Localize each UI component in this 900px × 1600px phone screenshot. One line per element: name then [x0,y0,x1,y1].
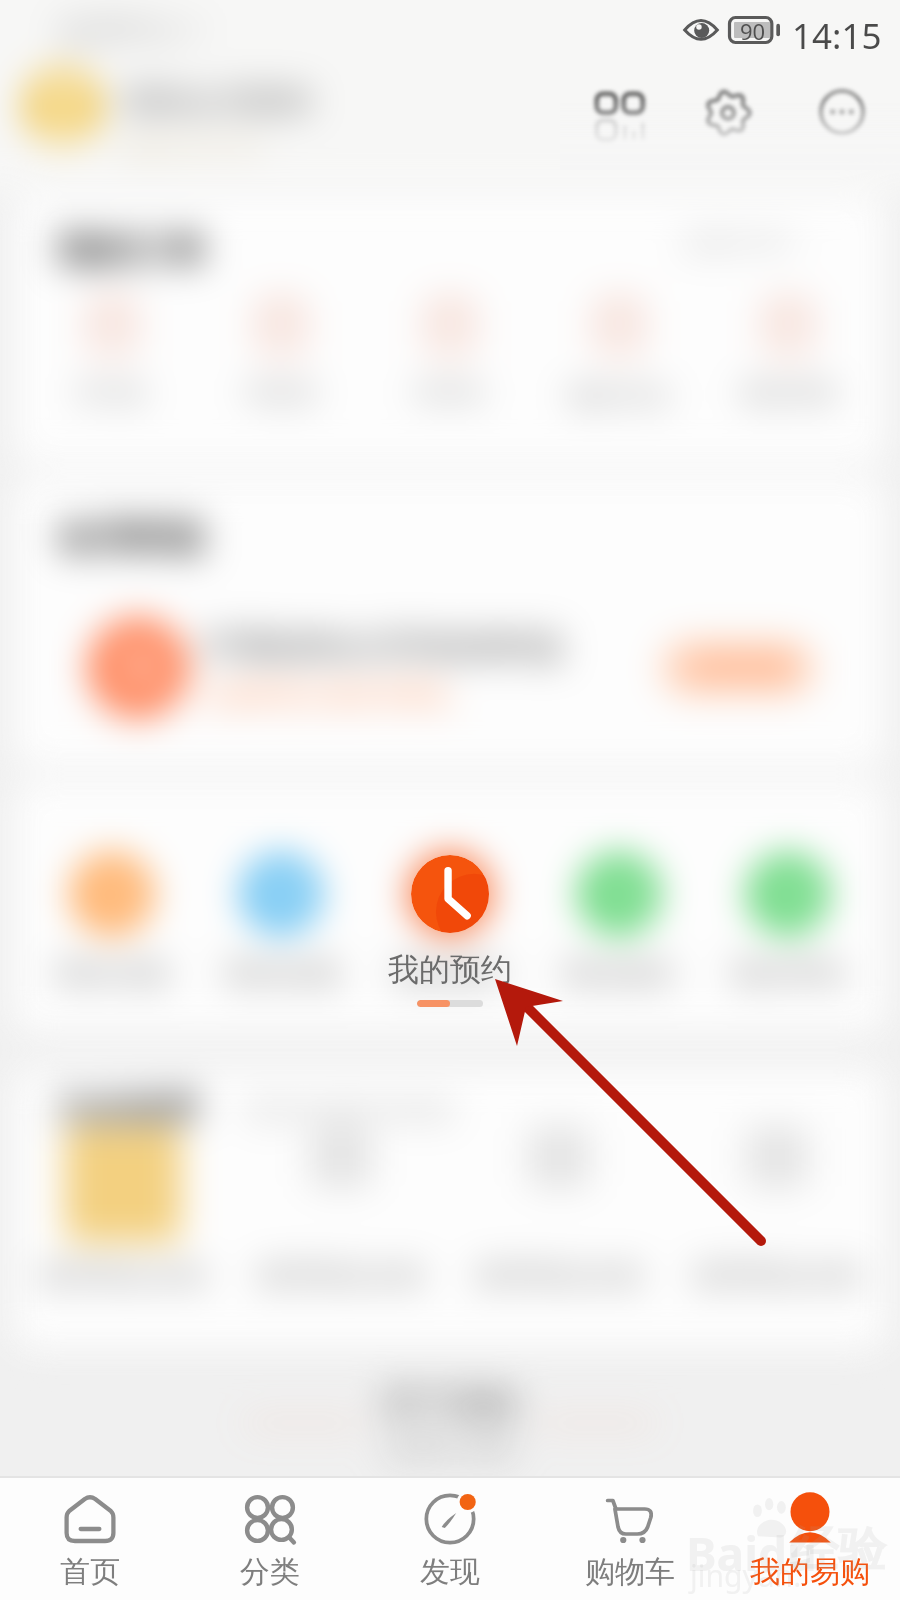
staticText: 我的优惠 [54,955,170,992]
button[interactable]: More options [807,77,877,147]
button[interactable]: Settings [693,78,763,148]
staticText: 首页 [60,1553,120,1591]
staticText: 我的服务 [561,955,677,992]
staticText: 会员中心 > [58,8,203,49]
staticText: 立即开通 [690,653,786,683]
staticText: 为你推荐 [55,1086,199,1131]
staticText: 发现 [420,1553,480,1591]
button[interactable]: Dashboard [583,80,653,150]
staticText: 我的收藏 [223,955,339,992]
staticText: 我的订单 [57,227,205,274]
staticText: 我的预约 [392,955,508,992]
staticText: 品质生活家 [385,1431,515,1464]
staticText: 90 [740,16,766,44]
button[interactable]: 分类 [180,1478,360,1600]
staticText: 经验 [790,1520,886,1580]
staticText: 我的帮助 [730,955,846,992]
staticText: 我的易购 [750,1553,870,1591]
staticText: 购物车 [585,1553,675,1591]
staticText: 分类 [240,1553,300,1591]
button[interactable]: 我的易购 [720,1478,900,1600]
staticText: 苏宁易购 [382,1382,518,1425]
button[interactable]: 我的预约 [365,855,535,1007]
staticText: 14:15 [792,12,882,60]
staticText: 推荐商品名称 [39,1258,207,1293]
button[interactable]: 发现 [360,1478,540,1600]
staticText: 会员权益 [57,513,205,560]
staticText: 我的预约 [365,950,535,989]
staticText: 开通超级会员享超值权益 [202,625,565,667]
button[interactable]: 首页 [0,1478,180,1600]
staticText: 立省999元 每月专享礼 [202,677,452,711]
staticText: 易购会员昵称 [121,81,313,121]
button[interactable]: 购物车 [540,1478,720,1600]
staticText: Baidu [686,1522,817,1585]
staticText: jingyan. [690,1555,802,1596]
